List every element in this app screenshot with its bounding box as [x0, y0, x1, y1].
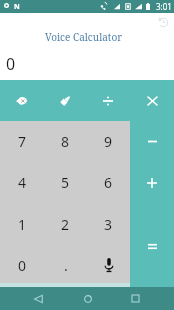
staticText: 3	[104, 215, 113, 234]
button[interactable]: 8	[44, 121, 87, 162]
button[interactable]: History	[153, 12, 173, 32]
button[interactable]: 9	[87, 121, 130, 162]
button[interactable]: Recents	[124, 287, 147, 310]
button[interactable]: Minus	[130, 121, 174, 162]
staticText: 4	[18, 173, 27, 192]
staticText: 2	[61, 215, 70, 234]
button[interactable]: Plus	[130, 162, 174, 204]
staticText: 8	[61, 132, 70, 151]
button[interactable]: 0	[0, 245, 44, 283]
staticText: 7	[18, 132, 27, 151]
button[interactable]: 1	[0, 203, 44, 245]
button[interactable]: .	[44, 245, 87, 283]
button[interactable]: Home	[76, 287, 99, 310]
button[interactable]: 3	[87, 203, 130, 245]
button[interactable]: Multiply	[130, 80, 174, 121]
staticText: Voice Calculator	[45, 30, 122, 44]
button[interactable]: 7	[0, 121, 44, 162]
staticText: .	[64, 256, 68, 275]
button[interactable]: Backspace	[0, 80, 43, 121]
staticText: N	[14, 2, 20, 12]
staticText: 0	[6, 53, 16, 75]
staticText: 5	[61, 173, 70, 192]
staticText: 3:01	[156, 1, 172, 12]
button[interactable]: 2	[44, 203, 87, 245]
button[interactable]: Divide	[86, 80, 130, 121]
staticText: 9	[104, 132, 113, 151]
staticText: 0	[18, 256, 27, 275]
button[interactable]: 5	[44, 162, 87, 203]
button[interactable]: 6	[87, 162, 130, 203]
button[interactable]: Back	[27, 287, 50, 310]
button[interactable]: Voice input	[87, 245, 130, 283]
button[interactable]: 4	[0, 162, 44, 203]
button[interactable]: Clear	[43, 80, 86, 121]
button[interactable]: Equals	[130, 204, 174, 287]
staticText: 1	[18, 215, 27, 234]
staticText: 6	[104, 173, 113, 192]
